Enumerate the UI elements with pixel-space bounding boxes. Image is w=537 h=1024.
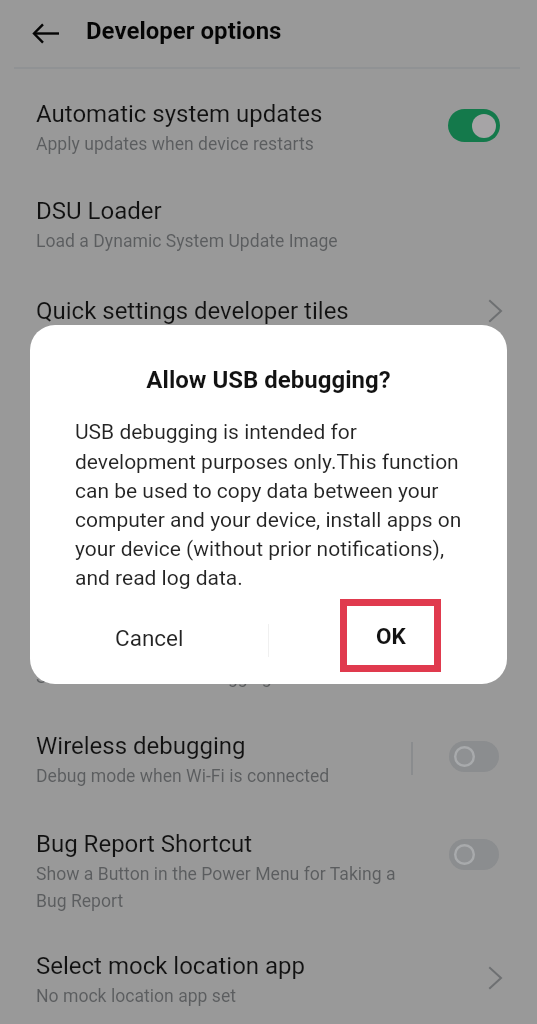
button[interactable]: Quick settings developer tiles — [0, 297, 537, 341]
staticText: Enable ADB debugging — [36, 364, 279, 392]
button[interactable]: Bug Report Shortcut — [0, 830, 537, 930]
staticText: OK — [376, 623, 406, 649]
button[interactable]: DSU Loader — [0, 197, 537, 271]
staticText: USB debugging shortcut — [36, 633, 295, 661]
staticText: Show a button to start logging — [36, 667, 506, 688]
button[interactable]: Cancel — [60, 605, 238, 677]
staticText: Revoke access from all computers — [36, 495, 506, 516]
staticText: Bug Report Shortcut — [36, 830, 253, 858]
staticText: Show a Button in the Power Menu for Taki… — [36, 864, 421, 912]
button[interactable]: Select mock location app — [0, 952, 537, 1024]
staticText: Debug mode when Wi-Fi is connected — [36, 766, 506, 787]
staticText: Automatic system updates — [36, 100, 323, 128]
button[interactable]: Revoke USB debugging authorizations — [0, 461, 537, 535]
button[interactable]: Toggle off — [449, 741, 499, 772]
button[interactable]: USB debugging shortcut — [0, 633, 537, 707]
staticText: Allow USB debugging? — [30, 366, 507, 394]
staticText: Apply updates when device restarts — [36, 134, 506, 155]
staticText: Quick settings developer tiles — [36, 297, 349, 325]
staticText: Default USB configuration — [36, 558, 311, 586]
staticText: USB debugging is intended for developmen… — [75, 420, 473, 590]
staticText: Load a Dynamic System Update Image — [36, 231, 506, 252]
staticText: Revoke USB debugging authorizations — [36, 461, 442, 489]
button[interactable]: Toggle on — [448, 109, 500, 142]
button[interactable]: OK — [347, 606, 434, 665]
button[interactable]: Automatic system updates — [0, 100, 537, 174]
button[interactable]: Back — [13, 0, 80, 67]
button[interactable]: Default USB configuration — [0, 558, 537, 632]
staticText: Cancel — [115, 625, 184, 651]
staticText: DSU Loader — [36, 197, 162, 225]
staticText: Developer options — [86, 17, 282, 45]
button[interactable]: Toggle off — [449, 839, 499, 870]
staticText: Charging — [36, 592, 506, 613]
button[interactable]: Wireless debugging — [0, 732, 537, 806]
button[interactable]: Enable ADB debugging — [0, 364, 537, 438]
staticText: Wireless debugging — [36, 732, 246, 760]
staticText: Select mock location app — [36, 952, 306, 980]
staticText: No mock location app set — [36, 986, 506, 1007]
